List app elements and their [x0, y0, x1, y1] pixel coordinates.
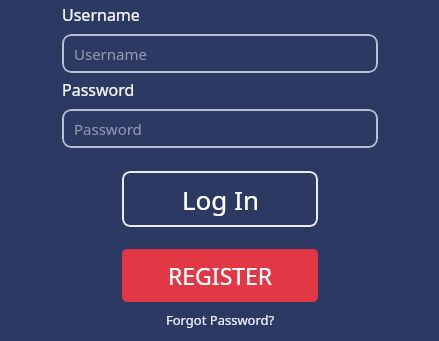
staticText: Password [74, 119, 142, 139]
staticText: Username [62, 4, 140, 26]
button[interactable]: Forgot Password? [160, 309, 281, 331]
button[interactable]: Log In [122, 171, 318, 227]
staticText: Username [74, 44, 147, 64]
button[interactable]: REGISTER [122, 249, 318, 302]
staticText: REGISTER [168, 260, 273, 291]
button[interactable]: Username [62, 34, 378, 73]
staticText: Password [62, 79, 135, 101]
staticText: Forgot Password? [166, 311, 275, 329]
button[interactable]: Password [62, 109, 378, 148]
staticText: Log In [182, 182, 259, 217]
